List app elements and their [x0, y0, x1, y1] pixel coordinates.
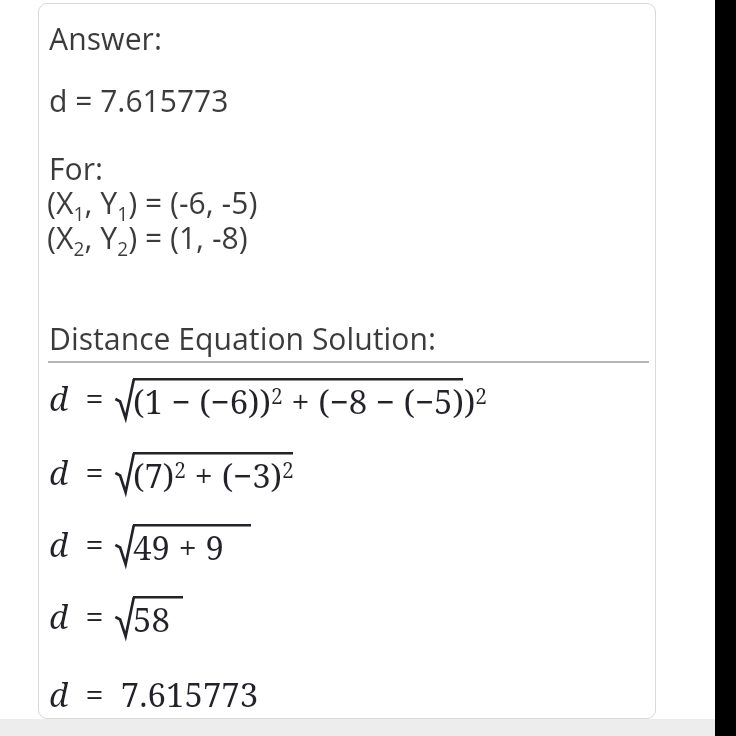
staticText: d = 7.615773 [49, 80, 229, 121]
staticText: (X2, Y2) = (1, -8) [47, 217, 248, 262]
staticText: (1 − (−6))2 + (−8 − (−5))2 [133, 379, 488, 424]
button[interactable] [38, 3, 656, 719]
staticText: d = [49, 594, 104, 639]
staticText: For: [49, 148, 104, 189]
staticText: 49 + 9 [133, 525, 224, 570]
staticText: (7)2 + (−3)2 [133, 453, 294, 498]
staticText: Answer: [49, 18, 163, 59]
staticText: d = [49, 522, 104, 567]
staticText: (X1, Y1) = (-6, -5) [47, 182, 258, 227]
staticText: Distance Equation Solution: [49, 318, 437, 359]
staticText: 58 [133, 597, 170, 642]
staticText: d = [49, 450, 104, 495]
staticText: d = 7.615773 [49, 672, 259, 717]
staticText: d = [49, 376, 104, 421]
